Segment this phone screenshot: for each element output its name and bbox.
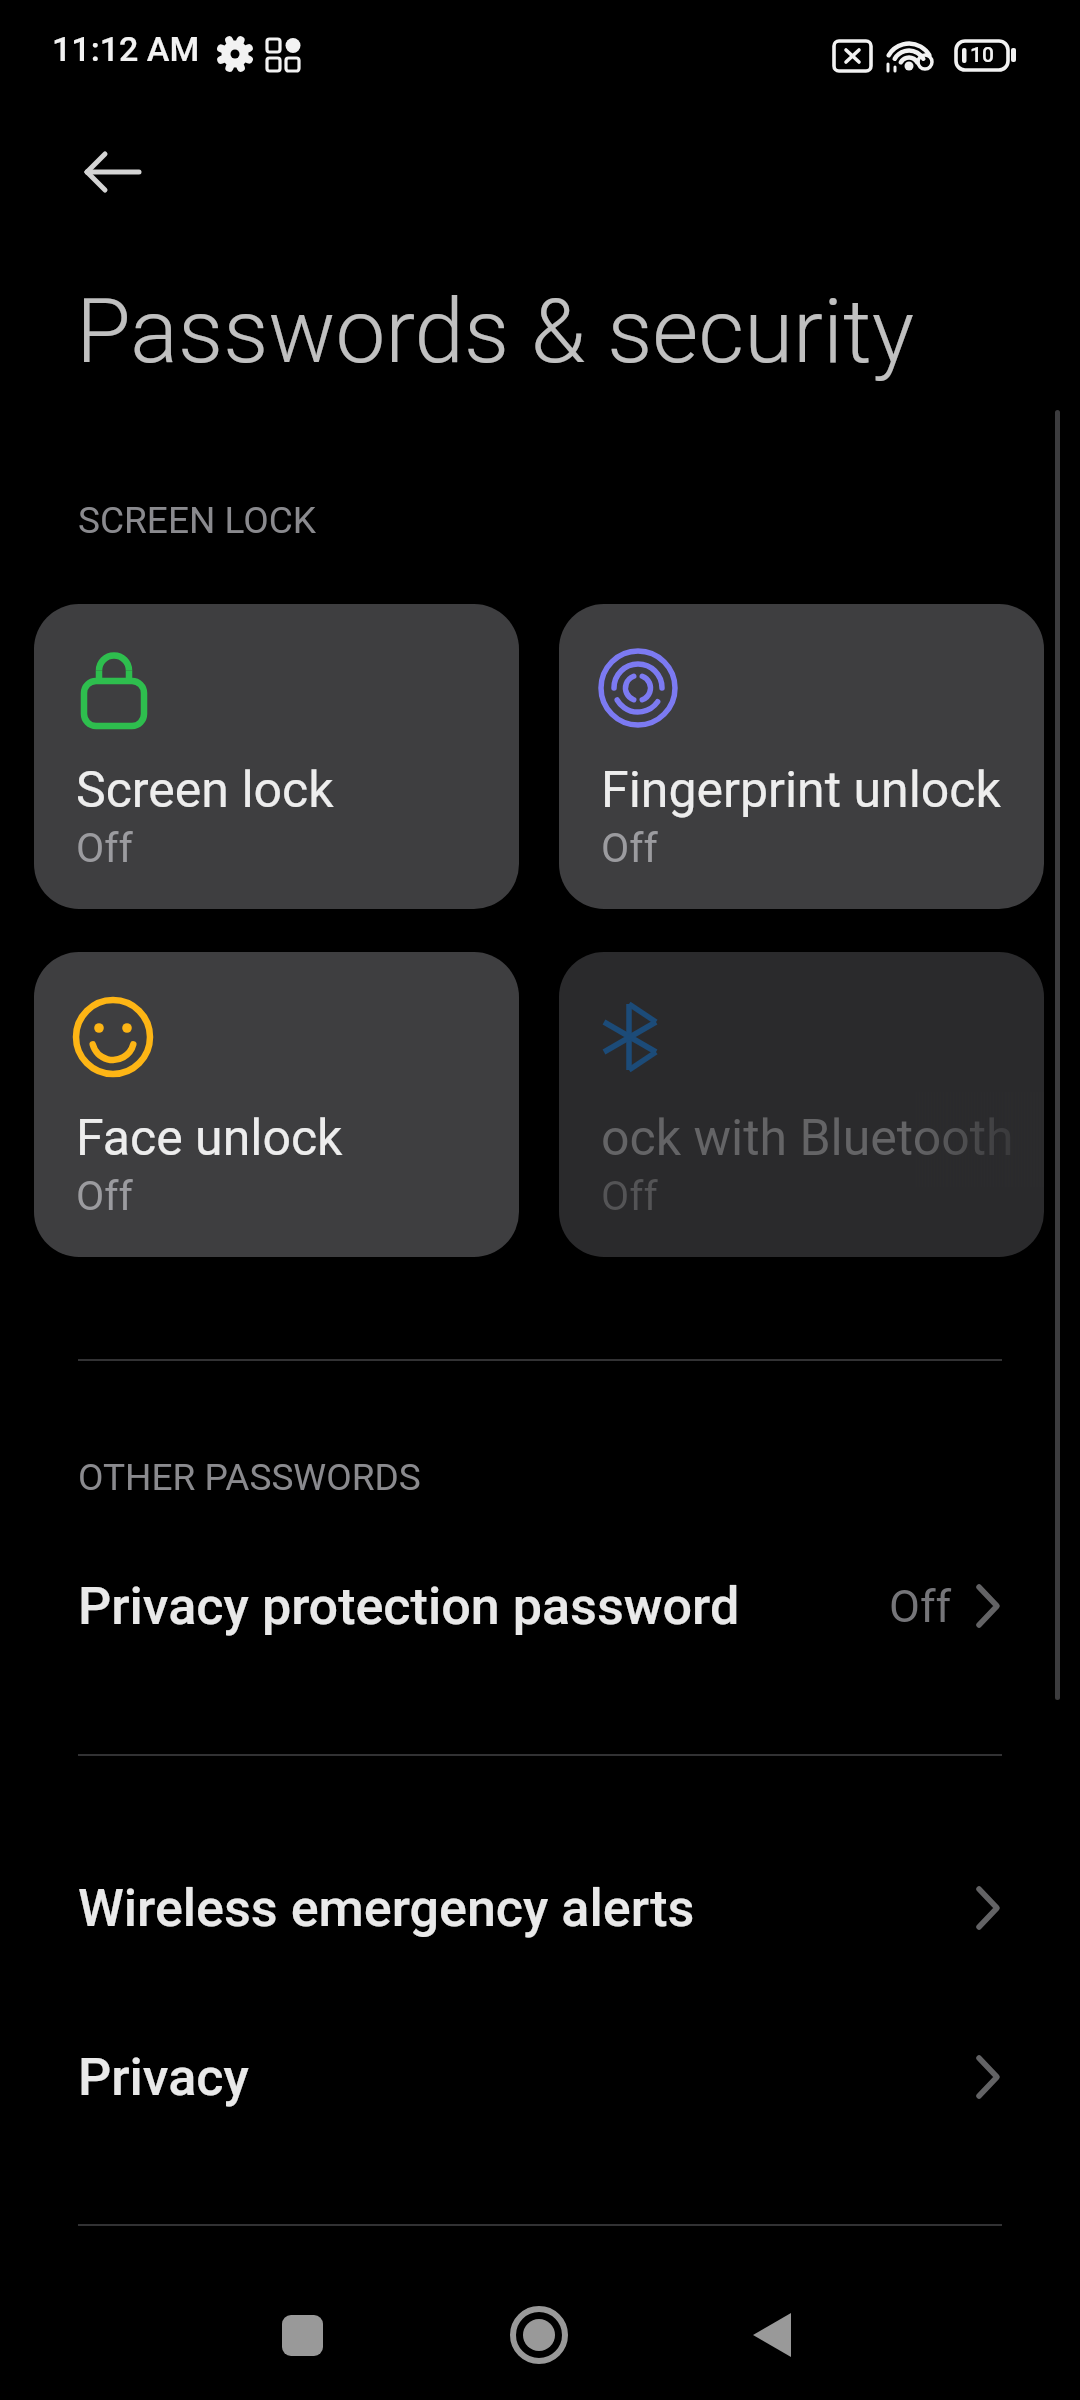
staticText: Screen lock [76,761,334,820]
staticText: Face unlock [76,1109,343,1168]
button[interactable]: Face unlock [34,952,519,1257]
staticText: Off [76,824,133,872]
staticText: 10 [970,43,994,68]
button[interactable]: Wireless emergency alerts [0,1833,1080,1983]
button[interactable] [58,118,168,228]
button[interactable]: Privacy [0,2002,1080,2152]
button[interactable]: Fingerprint unlock [559,604,1044,909]
button[interactable] [479,2275,599,2395]
staticText: Off [889,1580,952,1633]
staticText: ock with Bluetooth [601,1109,1014,1168]
button[interactable] [715,2275,835,2395]
button[interactable]: Screen lock [34,604,519,909]
staticText: Passwords & security [76,279,915,383]
staticText: 11:12 AM [52,29,200,69]
staticText: Off [601,1172,658,1220]
button[interactable]: ock with Bluetooth [559,952,1044,1257]
button[interactable]: Privacy protection password [0,1531,1080,1681]
staticText: Off [601,824,658,872]
staticText: OTHER PASSWORDS [78,1456,421,1499]
staticText: SCREEN LOCK [78,499,316,542]
staticText: Fingerprint unlock [601,761,1001,820]
staticText: Privacy protection password [78,1576,740,1637]
staticText: Wireless emergency alerts [78,1878,695,1939]
staticText: Privacy [78,2047,249,2108]
button[interactable] [243,2275,363,2395]
staticText: Off [76,1172,133,1220]
